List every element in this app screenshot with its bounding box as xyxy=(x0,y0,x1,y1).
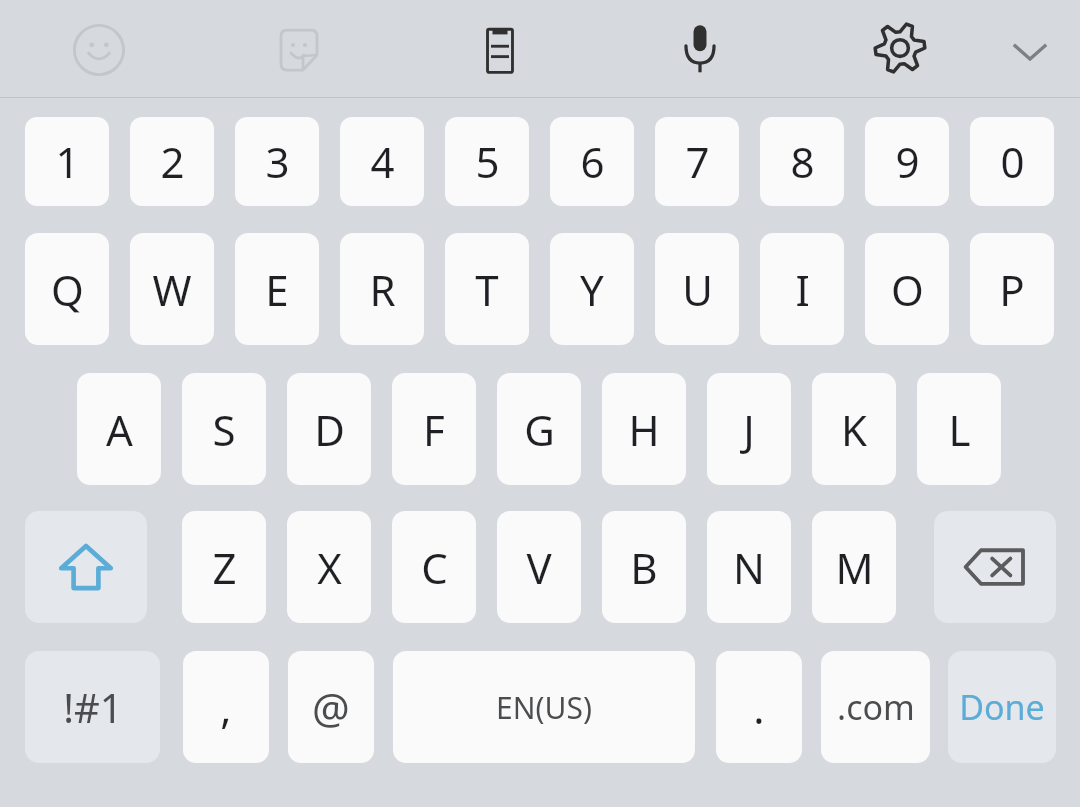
button[interactable]: L xyxy=(917,373,1001,485)
button[interactable]: S xyxy=(182,373,266,485)
staticText: 7 xyxy=(685,133,710,190)
button[interactable]: P xyxy=(970,233,1054,345)
button[interactable]: 4 xyxy=(340,117,424,206)
button[interactable]: C xyxy=(392,511,476,623)
staticText: .com xyxy=(837,684,915,730)
staticText: S xyxy=(212,401,236,458)
button[interactable]: I xyxy=(760,233,844,345)
button[interactable]: R xyxy=(340,233,424,345)
button[interactable]: Done xyxy=(948,651,1056,763)
button[interactable]: O xyxy=(865,233,949,345)
staticText: 3 xyxy=(265,133,290,190)
button[interactable]: 7 xyxy=(655,117,739,206)
button[interactable]: G xyxy=(497,373,581,485)
staticText: Z xyxy=(212,539,237,596)
button[interactable]: W xyxy=(130,233,214,345)
staticText: F xyxy=(423,401,445,458)
button[interactable]: D xyxy=(287,373,371,485)
staticText: P xyxy=(999,261,1025,318)
staticText: J xyxy=(743,401,755,458)
button[interactable]: Hide keyboard xyxy=(992,14,1068,90)
staticText: L xyxy=(948,401,971,458)
button[interactable]: 0 xyxy=(970,117,1054,206)
button[interactable]: Stickers xyxy=(259,10,339,90)
staticText: @ xyxy=(312,679,350,736)
button[interactable]: T xyxy=(445,233,529,345)
button[interactable]: B xyxy=(602,511,686,623)
button[interactable]: Settings xyxy=(860,8,940,88)
staticText: A xyxy=(106,401,133,458)
staticText: K xyxy=(841,401,867,458)
button[interactable]: 8 xyxy=(760,117,844,206)
button[interactable]: Backspace xyxy=(934,511,1056,623)
staticText: M xyxy=(835,539,874,596)
button[interactable]: Voice input xyxy=(660,8,740,88)
staticText: Done xyxy=(959,684,1045,730)
staticText: G xyxy=(524,401,555,458)
staticText: R xyxy=(369,261,396,318)
button[interactable]: H xyxy=(602,373,686,485)
staticText: B xyxy=(630,539,658,596)
button[interactable]: F xyxy=(392,373,476,485)
button[interactable]: X xyxy=(287,511,371,623)
button[interactable]: E xyxy=(235,233,319,345)
staticText: , xyxy=(220,679,232,736)
button[interactable]: , xyxy=(183,651,269,763)
button[interactable]: EN(US) xyxy=(393,651,695,763)
staticText: U xyxy=(682,261,713,318)
staticText: T xyxy=(475,261,499,318)
button[interactable]: Q xyxy=(25,233,109,345)
staticText: E xyxy=(265,261,289,318)
button[interactable]: 6 xyxy=(550,117,634,206)
staticText: EN(US) xyxy=(496,687,592,728)
button[interactable]: 3 xyxy=(235,117,319,206)
button[interactable]: Shift xyxy=(25,511,147,623)
button[interactable]: J xyxy=(707,373,791,485)
button[interactable]: .com xyxy=(821,651,930,763)
staticText: C xyxy=(421,539,448,596)
staticText: 9 xyxy=(895,133,920,190)
button[interactable]: Z xyxy=(182,511,266,623)
staticText: 1 xyxy=(55,133,80,190)
button[interactable]: Emoji xyxy=(59,10,139,90)
button[interactable]: . xyxy=(716,651,802,763)
staticText: 0 xyxy=(1000,133,1025,190)
staticText: !#1 xyxy=(63,680,123,734)
staticText: 8 xyxy=(790,133,815,190)
button[interactable]: U xyxy=(655,233,739,345)
staticText: 5 xyxy=(475,133,500,190)
staticText: D xyxy=(314,401,345,458)
button[interactable]: 2 xyxy=(130,117,214,206)
button[interactable]: Y xyxy=(550,233,634,345)
button[interactable]: !#1 xyxy=(25,651,160,763)
staticText: Q xyxy=(51,261,84,318)
staticText: Y xyxy=(580,261,604,318)
staticText: V xyxy=(526,539,552,596)
staticText: 2 xyxy=(160,133,185,190)
button[interactable]: 9 xyxy=(865,117,949,206)
staticText: O xyxy=(891,261,924,318)
button[interactable]: Clipboard xyxy=(460,10,540,90)
button[interactable]: K xyxy=(812,373,896,485)
staticText: W xyxy=(152,261,192,318)
staticText: . xyxy=(753,679,765,736)
button[interactable]: N xyxy=(707,511,791,623)
staticText: H xyxy=(628,401,660,458)
staticText: 6 xyxy=(580,133,605,190)
button[interactable]: 1 xyxy=(25,117,109,206)
button[interactable]: @ xyxy=(288,651,374,763)
button[interactable]: 5 xyxy=(445,117,529,206)
staticText: X xyxy=(317,539,342,596)
staticText: 4 xyxy=(370,133,395,190)
staticText: N xyxy=(733,539,765,596)
button[interactable]: V xyxy=(497,511,581,623)
button[interactable]: A xyxy=(77,373,161,485)
staticText: I xyxy=(795,261,810,318)
button[interactable]: M xyxy=(812,511,896,623)
